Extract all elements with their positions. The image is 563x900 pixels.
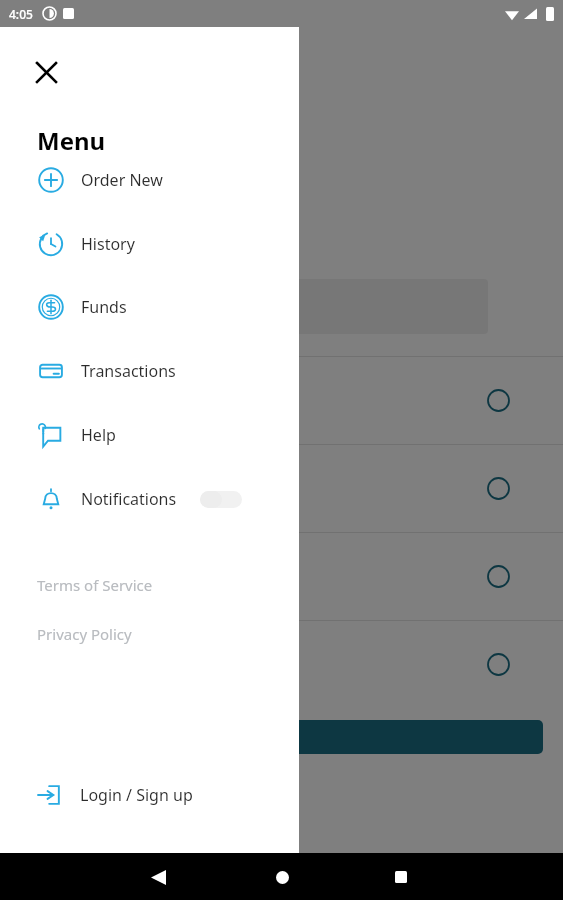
button[interactable]: History bbox=[0, 218, 299, 270]
button[interactable]: Transactions bbox=[0, 345, 299, 397]
button[interactable] bbox=[0, 532, 563, 620]
staticText: App Choice bbox=[20, 129, 159, 163]
button[interactable]: Terms of Service bbox=[37, 575, 153, 595]
button[interactable]: Home bbox=[264, 859, 300, 895]
staticText: Funds bbox=[81, 296, 127, 318]
staticText: Order New bbox=[81, 169, 163, 191]
staticText: Showing 3 bbox=[20, 231, 98, 253]
button[interactable]: Privacy Policy bbox=[37, 624, 132, 644]
button[interactable]: Close menu bbox=[28, 54, 64, 90]
button[interactable]: Back bbox=[140, 859, 176, 895]
button[interactable]: Recent apps bbox=[383, 859, 419, 895]
staticText: Login / Sign up bbox=[80, 784, 193, 806]
button[interactable]: Order New bbox=[0, 154, 299, 206]
button[interactable] bbox=[20, 720, 543, 754]
staticText: 4:05 bbox=[9, 6, 33, 22]
button[interactable]: Help bbox=[0, 409, 299, 461]
staticText: Help bbox=[81, 424, 116, 446]
staticText: Notifications bbox=[81, 488, 177, 510]
staticText: Menu bbox=[37, 124, 106, 157]
staticText: Search by website or app name bbox=[20, 181, 255, 203]
button[interactable]: Notifications toggle bbox=[200, 491, 242, 508]
button[interactable]: Notifications bbox=[0, 473, 299, 525]
staticText: History bbox=[81, 233, 135, 255]
button[interactable] bbox=[0, 444, 563, 532]
staticText: Transactions bbox=[81, 360, 176, 382]
button[interactable]: Funds bbox=[0, 281, 299, 333]
button[interactable]: Login / Sign up bbox=[0, 769, 299, 821]
button[interactable] bbox=[0, 356, 563, 444]
button[interactable] bbox=[0, 620, 563, 708]
button[interactable] bbox=[20, 279, 488, 334]
